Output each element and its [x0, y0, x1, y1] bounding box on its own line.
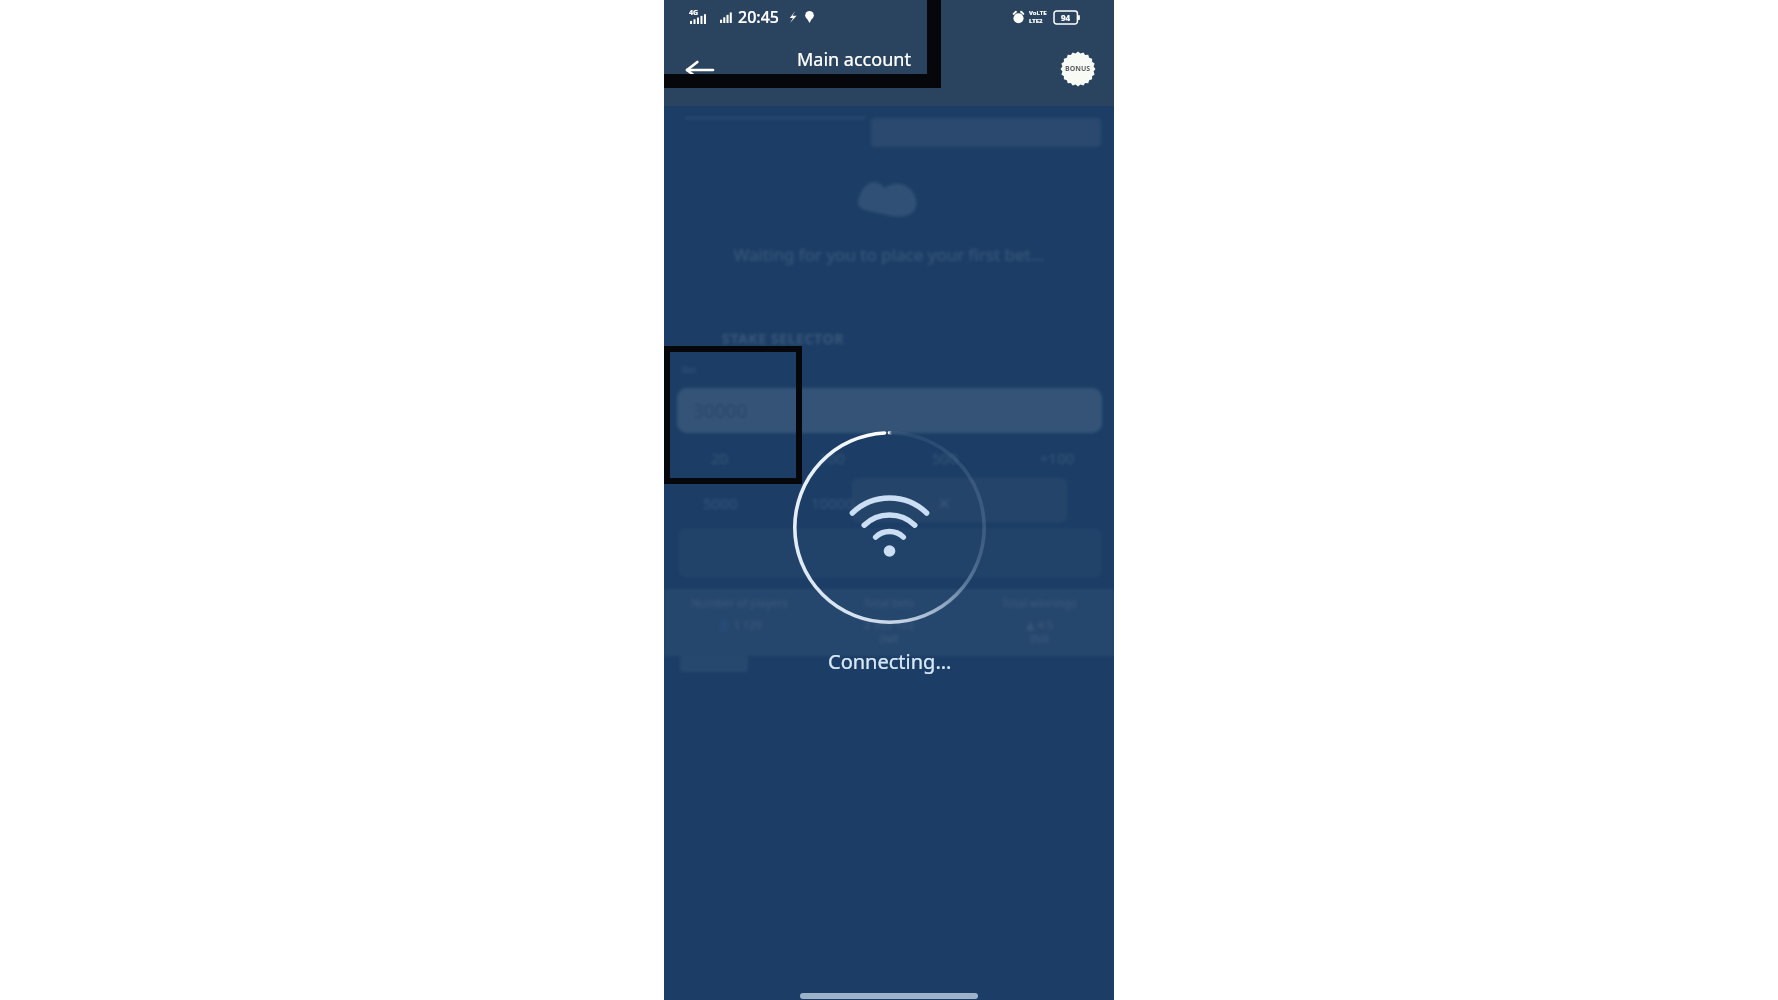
- button[interactable]: 30000: [677, 388, 1102, 433]
- staticText: 20: [711, 448, 729, 468]
- button[interactable]: Back: [677, 48, 721, 92]
- staticText: Bet: [682, 363, 697, 375]
- staticText: 2 355 102 INR: [864, 617, 914, 646]
- staticText: VoLTE: [1029, 9, 1047, 17]
- button[interactable]: 10000: [776, 488, 888, 518]
- staticText: +100: [1040, 448, 1075, 468]
- staticText: 4G: [689, 8, 699, 18]
- button[interactable]: 100: [776, 443, 888, 473]
- staticText: 20:45: [738, 6, 779, 28]
- button[interactable]: Place bet: [678, 528, 1102, 578]
- button[interactable]: Bonus: [1059, 50, 1097, 88]
- button[interactable]: [1001, 488, 1114, 518]
- button[interactable]: 500: [888, 443, 1001, 473]
- staticText: Connecting...: [828, 648, 952, 675]
- staticText: 5000: [703, 493, 738, 513]
- staticText: 10000: [811, 493, 854, 513]
- staticText: STAKE SELECTOR: [722, 329, 844, 348]
- staticText: ✕: [938, 495, 951, 512]
- staticText: ▲ 4 5 INR: [1026, 617, 1053, 646]
- staticText: BONUS: [1065, 64, 1091, 74]
- staticText: Waiting for you to place your first bet.…: [664, 243, 1114, 266]
- staticText: LTE2: [1029, 17, 1043, 25]
- button[interactable]: ✕: [888, 488, 1001, 518]
- staticText: Main account: [797, 47, 911, 72]
- staticText: 94: [1061, 12, 1071, 23]
- button[interactable]: 20: [664, 443, 776, 473]
- staticText: 100: [819, 448, 845, 468]
- staticText: 500: [932, 448, 958, 468]
